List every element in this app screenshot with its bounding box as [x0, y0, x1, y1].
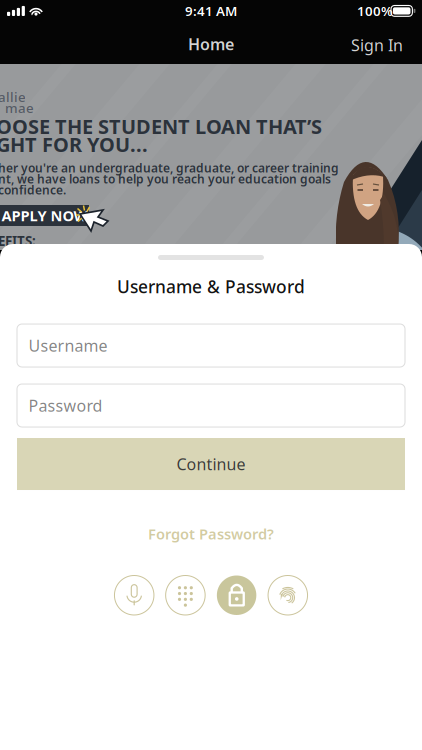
button[interactable]: Sign In [332, 25, 422, 65]
staticText: APPLY NOW [1, 206, 87, 225]
staticText: nt, we have loans to help you reach your… [0, 171, 331, 187]
button[interactable]: Password [17, 384, 405, 427]
staticText: Forgot Password? [148, 524, 274, 543]
staticText: GHT FOR YOU... [0, 131, 148, 158]
staticText: Username & Password [117, 275, 305, 298]
button[interactable]: Voice login [114, 575, 154, 615]
staticText: 100% [357, 2, 393, 20]
staticText: Password [29, 395, 103, 416]
staticText: Username [29, 335, 108, 356]
button[interactable]: Forgot Password? [134, 516, 288, 551]
button[interactable]: Touch ID login [268, 575, 308, 615]
button[interactable]: Passcode login [166, 575, 205, 615]
staticText: confidence. [0, 182, 66, 198]
staticText: mae [5, 99, 34, 117]
staticText: her you're an undergraduate, graduate, o… [0, 160, 339, 176]
staticText: 9:41 AM [185, 2, 237, 20]
staticText: OOSE THE STUDENT LOAN THAT’S [0, 113, 322, 140]
button[interactable]: Continue [17, 438, 405, 490]
staticText: Home [188, 33, 234, 55]
button[interactable]: Username [17, 324, 405, 367]
button[interactable]: APPLY NOW [0, 205, 89, 226]
staticText: EFITS: [0, 232, 36, 250]
staticText: allie [0, 88, 26, 106]
button[interactable]: Password login [217, 575, 256, 615]
staticText: Sign In [351, 34, 403, 56]
staticText: Continue [176, 453, 245, 475]
